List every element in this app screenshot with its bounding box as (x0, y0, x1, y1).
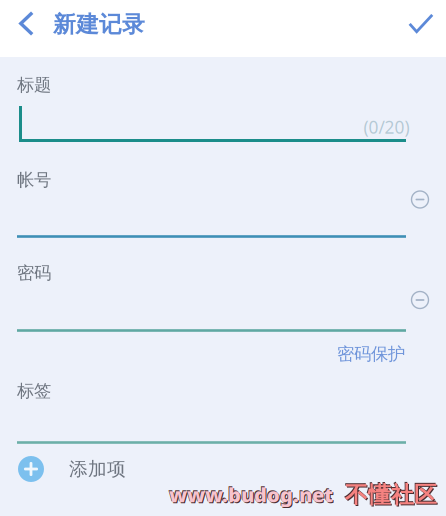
button[interactable]: 保存 (395, 0, 446, 46)
staticText: 新建记录 (53, 11, 145, 38)
button[interactable]: 删除密码 (400, 280, 440, 320)
button[interactable]: 返回 (3, 0, 49, 46)
staticText: 添加项 (69, 457, 126, 480)
staticText: 标题 (17, 74, 51, 96)
staticText: 密码 (17, 262, 51, 284)
button[interactable]: 删除帐号 (400, 179, 440, 219)
staticText: 不懂社区 (345, 481, 437, 509)
staticText: (0/20) (363, 115, 409, 138)
button[interactable]: 添加项 (18, 447, 158, 491)
button[interactable]: 密码保护 (295, 339, 405, 369)
staticText: 密码保护 (337, 343, 405, 365)
staticText: 帐号 (17, 169, 51, 191)
staticText: 标签 (17, 380, 51, 402)
staticText: www.budog.net (169, 481, 333, 508)
